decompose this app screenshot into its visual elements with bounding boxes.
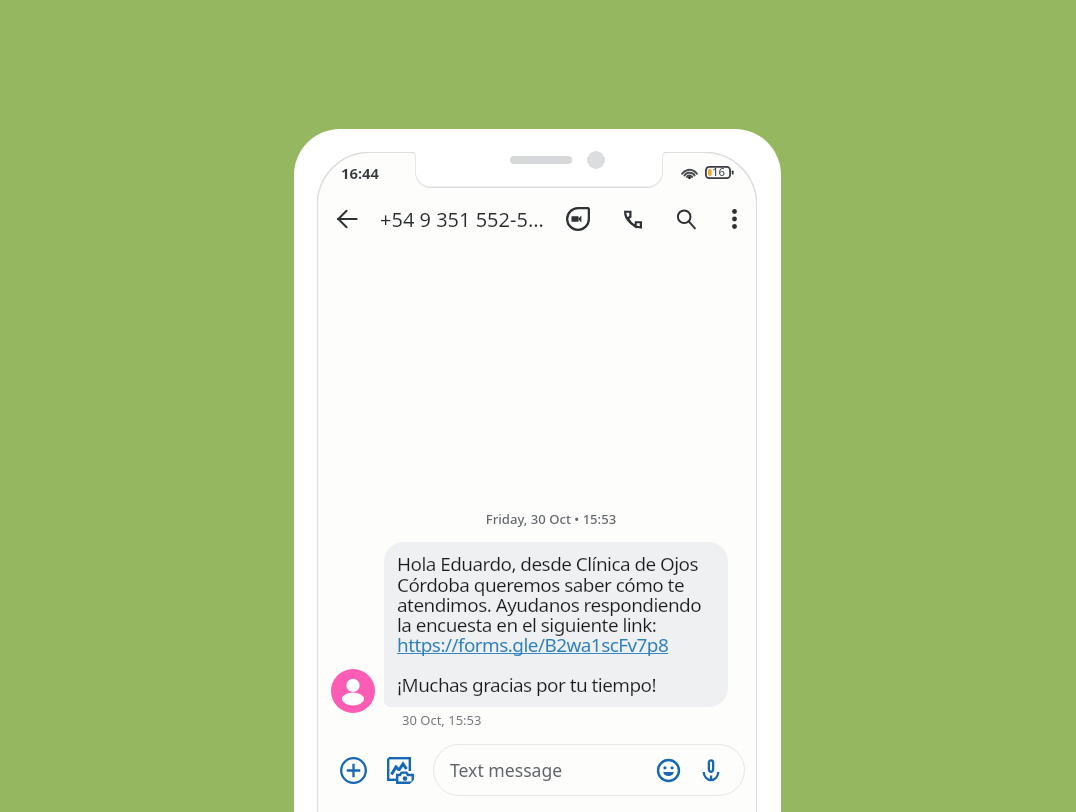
button[interactable]: Hola Eduardo, desde Clínica de Ojos Córd… xyxy=(384,542,728,707)
staticText: 16 xyxy=(712,164,726,180)
button[interactable]: Text message xyxy=(433,744,745,796)
button[interactable]: Contact avatar xyxy=(331,669,375,713)
button[interactable]: More options xyxy=(714,199,754,239)
button[interactable]: Video call xyxy=(558,199,598,239)
staticText: +54 9 351 552-5… xyxy=(380,206,544,233)
button[interactable]: Camera and gallery xyxy=(383,753,417,787)
staticText: 30 Oct, 15:53 xyxy=(402,711,482,729)
button[interactable]: Search xyxy=(666,199,706,239)
button[interactable]: Call xyxy=(612,199,652,239)
staticText: 16:44 xyxy=(341,163,380,183)
staticText: Text message xyxy=(450,758,563,782)
button[interactable]: Back xyxy=(327,199,367,239)
button[interactable]: Emoji xyxy=(653,755,684,786)
staticText: Friday, 30 Oct • 15:53 xyxy=(331,510,757,528)
button[interactable]: Add attachment xyxy=(336,753,370,787)
staticText: Hola Eduardo, desde Clínica de Ojos Córd… xyxy=(397,551,702,698)
button[interactable]: Voice message xyxy=(696,755,726,785)
